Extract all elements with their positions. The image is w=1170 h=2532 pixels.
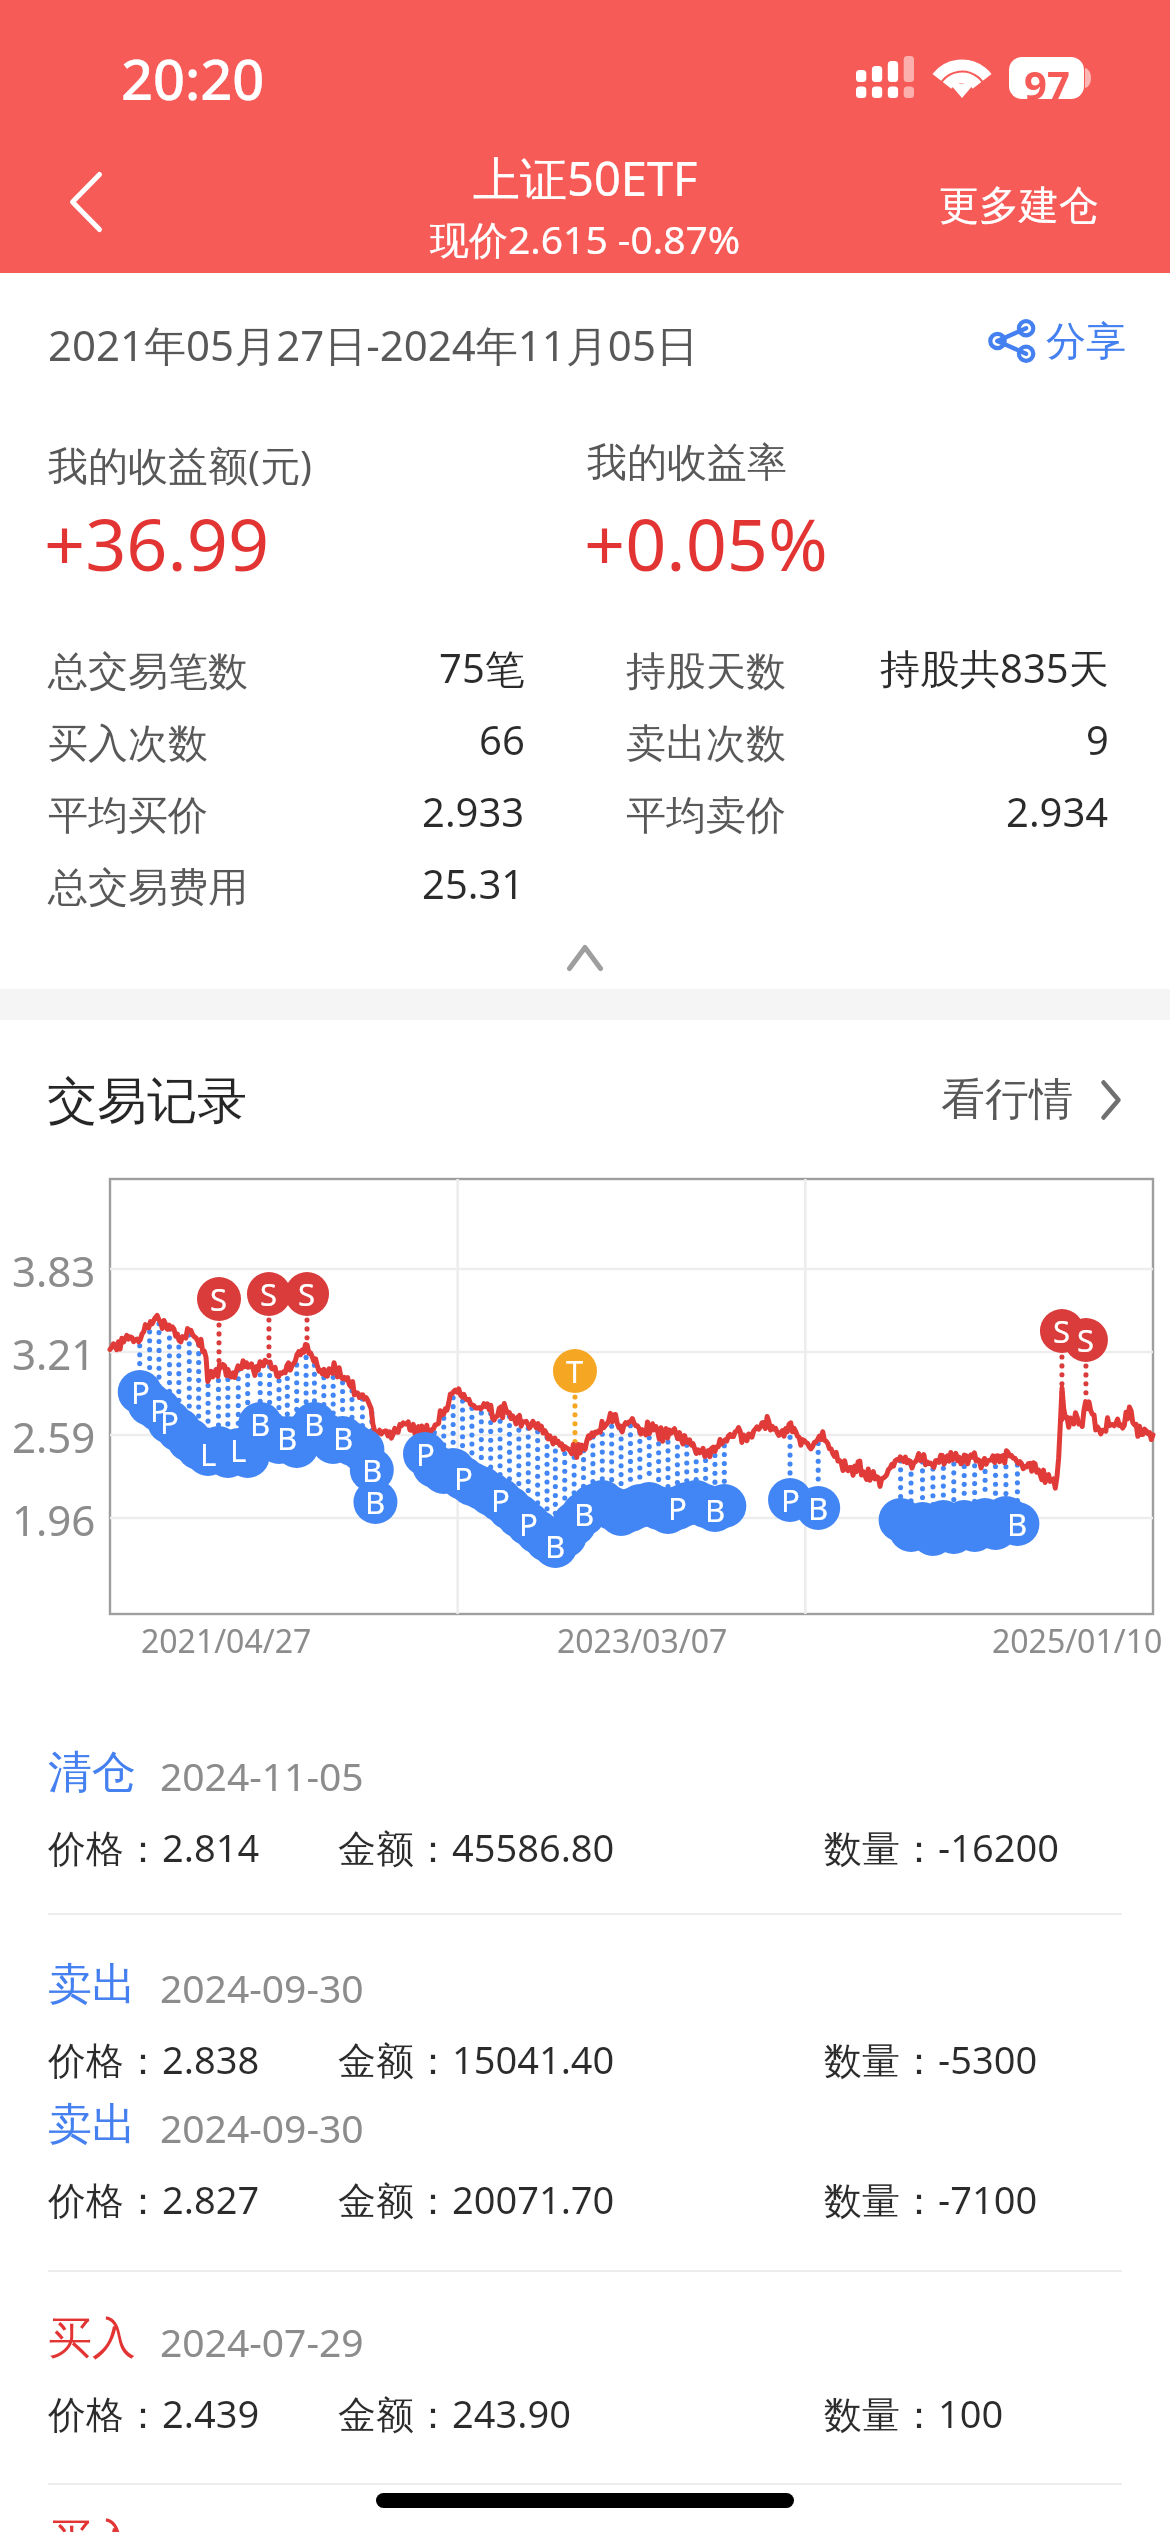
staticText: 2023/03/07 bbox=[557, 1619, 728, 1663]
staticText: 看行情 bbox=[941, 1072, 1073, 1127]
staticText: 平均卖价 bbox=[626, 790, 786, 840]
staticText: 交易记录 bbox=[47, 1070, 247, 1133]
staticText: 75笔 bbox=[439, 640, 525, 695]
staticText: 66 bbox=[479, 712, 525, 766]
staticText: 2.59 bbox=[12, 1408, 96, 1465]
staticText: 2021/04/27 bbox=[141, 1619, 312, 1663]
button[interactable]: 清仓 bbox=[0, 1745, 1170, 1895]
staticText: S bbox=[210, 1278, 228, 1320]
staticText: S bbox=[298, 1273, 316, 1315]
staticText: P bbox=[131, 1371, 150, 1413]
staticText: B bbox=[304, 1403, 325, 1445]
staticText: 价格：2.827 bbox=[48, 2173, 260, 2225]
staticText: B bbox=[545, 1525, 566, 1567]
staticText: 2025/01/10 bbox=[992, 1619, 1163, 1663]
staticText: 卖出次数 bbox=[626, 718, 786, 768]
staticText: 2.933 bbox=[422, 784, 525, 838]
staticText: B bbox=[277, 1417, 298, 1459]
staticText: 20:20 bbox=[121, 40, 265, 116]
staticText: 2024-09-30 bbox=[160, 2101, 364, 2154]
staticText: L bbox=[200, 1433, 217, 1475]
staticText: P bbox=[416, 1433, 435, 1475]
staticText: 数量：-5300 bbox=[824, 2033, 1038, 2085]
staticText: 持股共835天 bbox=[880, 640, 1109, 695]
staticText: P bbox=[454, 1457, 473, 1499]
staticText: P bbox=[150, 1389, 169, 1431]
staticText: B bbox=[808, 1487, 829, 1529]
staticText: T bbox=[566, 1350, 584, 1392]
staticText: L bbox=[230, 1429, 247, 1471]
staticText: 金额：45586.80 bbox=[338, 1821, 615, 1873]
staticText: 平均买价 bbox=[48, 790, 208, 840]
button[interactable]: 买入 bbox=[0, 2311, 1170, 2461]
staticText: B bbox=[574, 1493, 595, 1535]
staticText: 买入次数 bbox=[48, 718, 208, 768]
staticText: 现价2.615 -0.87% bbox=[430, 212, 741, 265]
staticText: 价格：2.439 bbox=[48, 2387, 260, 2439]
staticText: 买入 bbox=[48, 2311, 136, 2366]
staticText: 数量：100 bbox=[824, 2387, 1004, 2439]
staticText: +36.99 bbox=[44, 494, 270, 592]
staticText: 清仓 bbox=[48, 1745, 136, 1800]
staticText: 2024-09-30 bbox=[160, 1961, 364, 2014]
staticText: S bbox=[260, 1273, 278, 1315]
staticText: 卖出 bbox=[48, 1957, 136, 2012]
staticText: 25.31 bbox=[422, 856, 525, 910]
staticText: 持股天数 bbox=[626, 646, 786, 696]
staticText: P bbox=[519, 1503, 538, 1545]
button[interactable]: 分享 bbox=[984, 310, 1132, 372]
staticText: 金额：20071.70 bbox=[338, 2173, 615, 2225]
staticText: B bbox=[362, 1449, 383, 1491]
staticText: B bbox=[705, 1489, 726, 1531]
button[interactable]: 更多建仓 bbox=[923, 166, 1115, 244]
staticText: 买入 bbox=[48, 2513, 136, 2532]
staticText: 更多建仓 bbox=[939, 180, 1099, 230]
staticText: S bbox=[1053, 1310, 1071, 1352]
staticText: P bbox=[668, 1487, 687, 1529]
staticText: 我的收益额(元) bbox=[48, 437, 312, 492]
staticText: P bbox=[491, 1479, 510, 1521]
staticText: 3.21 bbox=[12, 1325, 96, 1382]
staticText: B bbox=[1007, 1503, 1028, 1545]
button[interactable]: Collapse bbox=[0, 930, 1170, 986]
staticText: P bbox=[781, 1479, 800, 1521]
staticText: 价格：2.814 bbox=[48, 1821, 260, 1873]
staticText: 2.934 bbox=[1006, 784, 1109, 838]
button[interactable]: 卖出 bbox=[0, 1957, 1170, 2107]
staticText: 2024-11-05 bbox=[160, 1749, 364, 1802]
button[interactable]: 卖出 bbox=[0, 2097, 1170, 2247]
staticText: 价格：2.838 bbox=[48, 2033, 260, 2085]
staticText: 2021年05月27日-2024年11月05日 bbox=[48, 316, 698, 373]
staticText: 金额：243.90 bbox=[338, 2387, 571, 2439]
staticText: 9 bbox=[1086, 712, 1109, 766]
staticText: B bbox=[333, 1417, 354, 1459]
staticText: 卖出 bbox=[48, 2097, 136, 2152]
button[interactable]: 看行情 bbox=[933, 1064, 1129, 1135]
staticText: 总交易费用 bbox=[48, 862, 248, 912]
staticText: 97 bbox=[1024, 57, 1070, 99]
staticText: S bbox=[1077, 1319, 1095, 1361]
staticText: 我的收益率 bbox=[587, 437, 787, 487]
staticText: 3.83 bbox=[12, 1242, 96, 1299]
staticText: B bbox=[250, 1403, 271, 1445]
staticText: 金额：15041.40 bbox=[338, 2033, 615, 2085]
staticText: P bbox=[160, 1401, 179, 1443]
staticText: 数量：-16200 bbox=[824, 1821, 1059, 1873]
staticText: B bbox=[365, 1481, 386, 1523]
staticText: 1.96 bbox=[12, 1491, 96, 1548]
button[interactable]: Back bbox=[24, 148, 148, 256]
staticText: 2024-07-29 bbox=[160, 2315, 364, 2368]
staticText: 上证50ETF bbox=[473, 146, 698, 210]
staticText: 分享 bbox=[1046, 316, 1126, 366]
staticText: 数量：-7100 bbox=[824, 2173, 1038, 2225]
staticText: +0.05% bbox=[584, 494, 828, 592]
staticText: 总交易笔数 bbox=[48, 646, 248, 696]
